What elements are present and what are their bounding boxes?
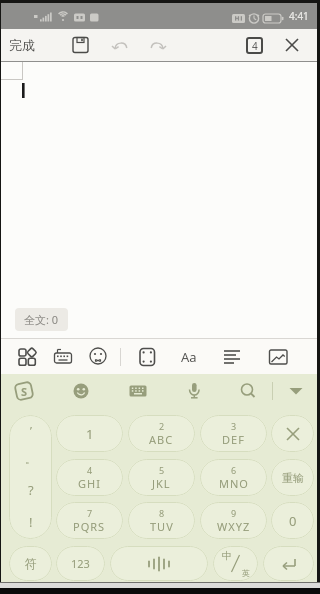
staticText: 1	[86, 425, 94, 443]
button[interactable]	[263, 546, 314, 581]
staticText: ABC	[149, 432, 174, 447]
staticText: !	[29, 513, 33, 531]
button[interactable]	[285, 380, 307, 402]
staticText: 全文: 0	[24, 312, 59, 327]
staticText: 4	[87, 464, 93, 476]
staticText: 英	[242, 568, 250, 578]
staticText: 中	[222, 549, 232, 562]
button[interactable]: S	[13, 380, 35, 402]
button[interactable]: 7	[56, 502, 123, 539]
button[interactable]	[136, 346, 158, 368]
button[interactable]	[271, 415, 314, 452]
button[interactable]: Aa	[177, 345, 201, 369]
staticText: 重输	[282, 471, 304, 485]
staticText: 8	[159, 507, 165, 519]
button[interactable]: 中	[213, 546, 258, 581]
button[interactable]	[110, 546, 208, 581]
staticText: 5	[159, 464, 165, 476]
button[interactable]	[283, 36, 301, 54]
button[interactable]	[183, 380, 205, 402]
button[interactable]: 5	[128, 459, 195, 496]
button[interactable]: 符	[9, 546, 52, 581]
button[interactable]	[221, 346, 243, 368]
staticText: 符	[25, 556, 37, 571]
button[interactable]: 6	[200, 459, 267, 496]
staticText: S	[21, 384, 28, 399]
staticText: 0	[289, 512, 297, 530]
staticText: ?	[28, 481, 34, 499]
button[interactable]: 1	[56, 415, 123, 452]
button[interactable]	[87, 346, 109, 368]
button[interactable]: 4	[246, 37, 263, 54]
staticText: 2	[159, 420, 165, 432]
button[interactable]	[147, 35, 167, 55]
staticText: GHI	[78, 476, 101, 491]
button[interactable]	[71, 35, 91, 55]
button[interactable]: 0	[271, 502, 314, 539]
button[interactable]	[16, 346, 38, 368]
button[interactable]: 2	[128, 415, 195, 452]
staticText: 7	[87, 507, 93, 519]
button[interactable]: 9	[200, 502, 267, 539]
button[interactable]: 123	[56, 546, 105, 581]
staticText: 123	[71, 556, 90, 571]
button[interactable]: 8	[128, 502, 195, 539]
staticText: MNO	[219, 476, 249, 491]
staticText: DEF	[222, 432, 245, 447]
staticText: WXYZ	[217, 519, 251, 534]
button[interactable]	[237, 380, 259, 402]
staticText: ’	[30, 423, 32, 438]
staticText: TUV	[150, 519, 174, 534]
button[interactable]	[111, 35, 131, 55]
button[interactable]: 4	[56, 459, 123, 496]
button[interactable]	[52, 346, 74, 368]
staticText: 4:41	[289, 9, 309, 23]
staticText: 3	[231, 420, 237, 432]
button[interactable]: ’	[9, 415, 52, 539]
staticText: 6	[231, 464, 237, 476]
button[interactable]: 重输	[271, 459, 314, 496]
staticText: 9	[231, 507, 237, 519]
staticText: 。	[25, 452, 36, 466]
button[interactable]	[267, 346, 289, 368]
staticText: 完成	[9, 37, 35, 53]
button[interactable]: 完成	[7, 35, 37, 55]
button[interactable]	[127, 380, 149, 402]
staticText: Aa	[181, 348, 197, 366]
staticText: PQRS	[73, 519, 106, 534]
staticText: JKL	[152, 476, 171, 491]
staticText: 4	[252, 39, 258, 53]
button[interactable]	[70, 380, 92, 402]
button[interactable]: 3	[200, 415, 267, 452]
